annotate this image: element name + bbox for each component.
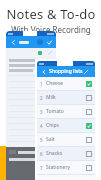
staticText: Cheese [46,80,64,87]
staticText: Tomato [46,108,64,115]
staticText: Milk [46,94,56,101]
button[interactable]: 5 [37,133,95,146]
button[interactable]: Tag [38,51,42,55]
button[interactable]: 4 [37,119,95,132]
button[interactable]: Save [46,39,53,46]
staticText: Chips [46,122,60,129]
staticText: Snacks [46,150,63,157]
staticText: With Voice Recording [11,24,91,35]
staticText: 7 [40,165,43,171]
button[interactable]: 2 [37,91,95,104]
button[interactable]: Record [37,39,43,45]
button[interactable]: 3 [37,105,95,118]
staticText: 4 [40,123,43,129]
staticText: Notes & To-do [6,5,96,23]
button[interactable]: Play recording [48,166,53,171]
button[interactable]: 7 [37,161,95,174]
staticText: 1 [40,81,43,87]
staticText: 2 [40,95,43,101]
button[interactable]: Back [9,38,17,46]
button[interactable]: Back [40,68,47,75]
staticText: Shopping lists [49,68,83,75]
button[interactable]: Edit list [83,69,89,75]
button[interactable]: 1 [37,77,95,90]
staticText: Salt [46,136,55,143]
staticText: 5 [40,137,43,143]
staticText: 3 [40,109,43,115]
staticText: 6 [40,151,43,157]
button[interactable]: 6 [37,147,95,160]
button[interactable]: Edit [47,50,52,55]
staticText: Stationery [46,164,71,171]
